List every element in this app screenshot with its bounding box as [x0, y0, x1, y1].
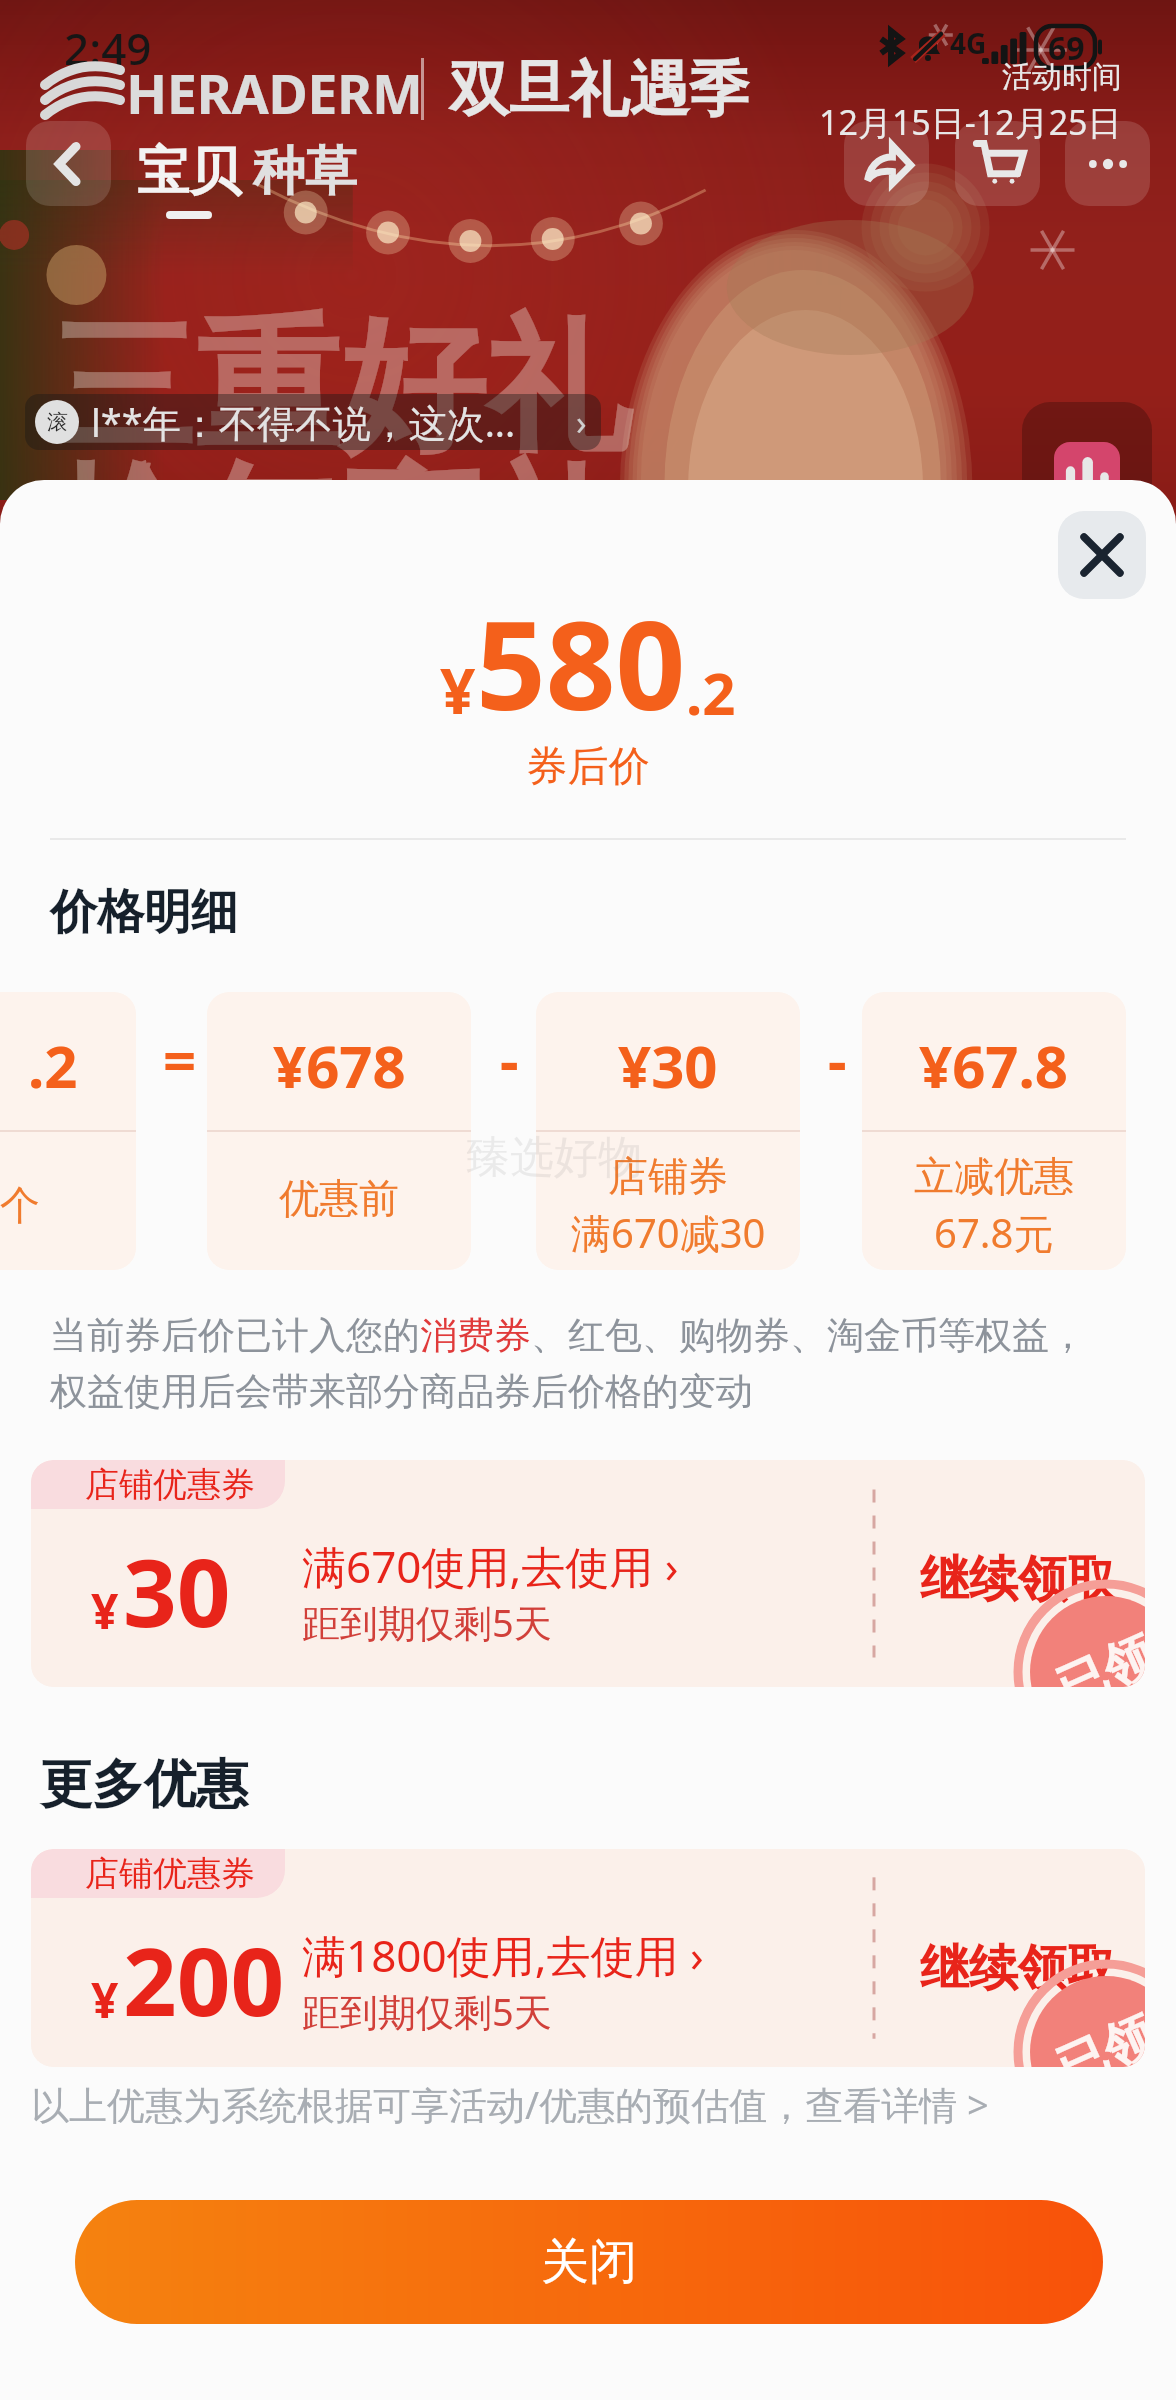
- button[interactable]: 店铺优惠券: [31, 1460, 1145, 1687]
- staticText: 4G: [950, 24, 987, 62]
- staticText: 12月15日-12月25日: [819, 99, 1122, 145]
- staticText: 价格明细: [50, 883, 238, 942]
- staticText: 2:49: [64, 18, 152, 78]
- button[interactable]: 以上优惠为系统根据可享活动/优惠的预估值，查看详情 >: [31, 2078, 989, 2130]
- staticText: -: [828, 1020, 847, 1099]
- staticText: .2: [28, 1026, 78, 1105]
- staticText: 30: [123, 1527, 231, 1655]
- staticText: 宝贝: [137, 139, 241, 205]
- button[interactable]: Cart: [955, 121, 1040, 206]
- button[interactable]: More: [1065, 121, 1150, 206]
- staticText: HERADERM: [126, 56, 423, 130]
- staticText: 臻选好物: [466, 1130, 642, 1185]
- button[interactable]: Share: [844, 121, 929, 206]
- staticText: .2: [686, 653, 736, 732]
- staticText: 店铺优惠券: [85, 1463, 255, 1506]
- button[interactable]: 店铺优惠券: [31, 1849, 1145, 2067]
- staticText: 69: [1048, 26, 1085, 68]
- staticText: -: [500, 1020, 519, 1099]
- staticText: 满1800使用,去使用 ›: [302, 1925, 704, 1985]
- staticText: ¥30: [618, 1026, 718, 1105]
- staticText: 店铺优惠券: [85, 1852, 255, 1895]
- button[interactable]: 种草: [249, 139, 361, 205]
- staticText: 店铺券: [608, 1151, 728, 1201]
- staticText: 权益使用后会带来部分商品券后价格的变动: [50, 1368, 753, 1415]
- staticText: 三重好礼: [50, 296, 630, 479]
- staticText: ¥67.8: [919, 1026, 1069, 1105]
- staticText: 个: [0, 1180, 40, 1230]
- staticText: ¥: [91, 1967, 119, 2032]
- button[interactable]: ¥678: [207, 992, 471, 1270]
- button[interactable]: Back: [26, 121, 111, 206]
- button[interactable]: .2: [0, 992, 136, 1270]
- staticText: =: [163, 1020, 197, 1099]
- button[interactable]: ¥67.8: [862, 992, 1126, 1270]
- staticText: 更多优惠: [40, 1752, 248, 1818]
- button[interactable]: 关闭: [75, 2200, 1103, 2324]
- button[interactable]: ¥30: [536, 992, 800, 1270]
- staticText: 立减优惠: [914, 1151, 1074, 1201]
- staticText: 双旦礼遇季: [449, 52, 749, 128]
- staticText: 继续领取: [920, 1938, 1116, 2000]
- staticText: l**年：不得不说，这次...: [91, 396, 516, 448]
- staticText: 200: [123, 1916, 285, 2044]
- staticText: 已领: [1047, 2003, 1145, 2067]
- staticText: 满670使用,去使用 ›: [302, 1536, 679, 1596]
- staticText: 距到期仅剩5天: [302, 1985, 552, 2037]
- staticText: 券后价: [0, 741, 1176, 793]
- staticText: 当前券后价已计入您的消费券、红包、购物券、淘金币等权益，: [50, 1312, 1086, 1359]
- staticText: 优惠前: [279, 1173, 399, 1223]
- staticText: 67.8元: [934, 1205, 1054, 1260]
- staticText: 已领: [1047, 1623, 1145, 1687]
- button[interactable]: Ranking: [1022, 402, 1152, 500]
- staticText: 活动时间: [1002, 58, 1122, 96]
- staticText: ›: [576, 399, 587, 445]
- staticText: ¥: [440, 648, 476, 732]
- button[interactable]: 滚: [25, 394, 601, 450]
- staticText: 距到期仅剩5天: [302, 1596, 552, 1648]
- staticText: 滚: [47, 409, 68, 435]
- staticText: 继续领取: [920, 1549, 1116, 1611]
- staticText: 满670减30: [571, 1205, 766, 1260]
- staticText: 关闭: [541, 2232, 637, 2292]
- staticText: ¥678: [273, 1026, 406, 1105]
- staticText: ¥: [91, 1578, 119, 1643]
- button[interactable]: Close: [1058, 511, 1146, 599]
- button[interactable]: 宝贝: [131, 139, 247, 219]
- staticText: 580: [476, 580, 686, 746]
- staticText: 抢年豪礼: [50, 442, 630, 625]
